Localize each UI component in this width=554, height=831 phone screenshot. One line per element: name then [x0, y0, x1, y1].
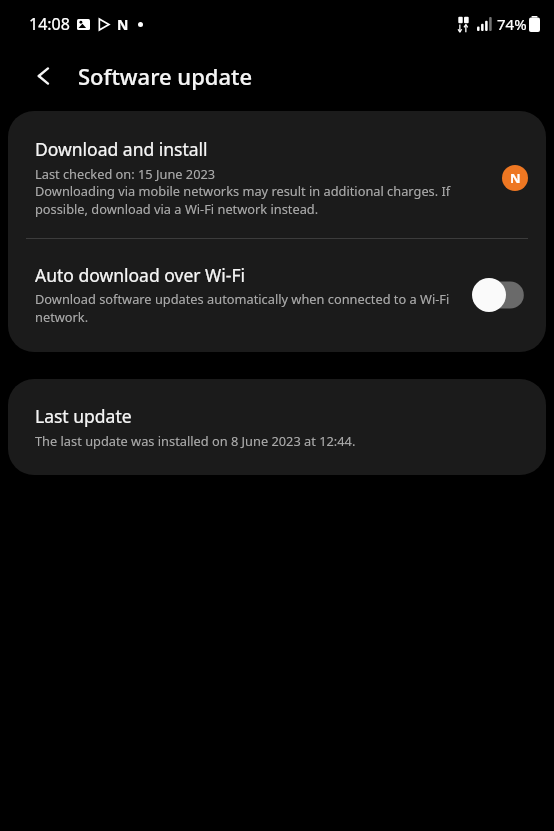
staticText: 74%: [497, 14, 527, 34]
staticText: 14:08: [29, 13, 70, 35]
button[interactable]: Download and install: [8, 111, 546, 238]
staticText: N: [510, 169, 521, 187]
staticText: Download and install: [35, 137, 208, 161]
staticText: Software update: [78, 61, 253, 91]
staticText: Last checked on: 15 June 2023: [35, 165, 216, 182]
staticText: Downloading via mobile networks may resu…: [35, 182, 492, 218]
staticText: Download software updates automatically …: [35, 290, 460, 326]
staticText: Auto download over Wi-Fi: [35, 263, 246, 287]
staticText: N: [117, 15, 129, 34]
button[interactable]: Last update: [8, 379, 546, 475]
button[interactable]: Back: [22, 54, 66, 98]
staticText: The last update was installed on 8 June …: [35, 432, 356, 449]
staticText: Last update: [35, 404, 132, 428]
button[interactable]: Auto download over Wi-Fi toggle: [472, 278, 526, 312]
button[interactable]: Auto download over Wi-Fi: [8, 239, 546, 352]
